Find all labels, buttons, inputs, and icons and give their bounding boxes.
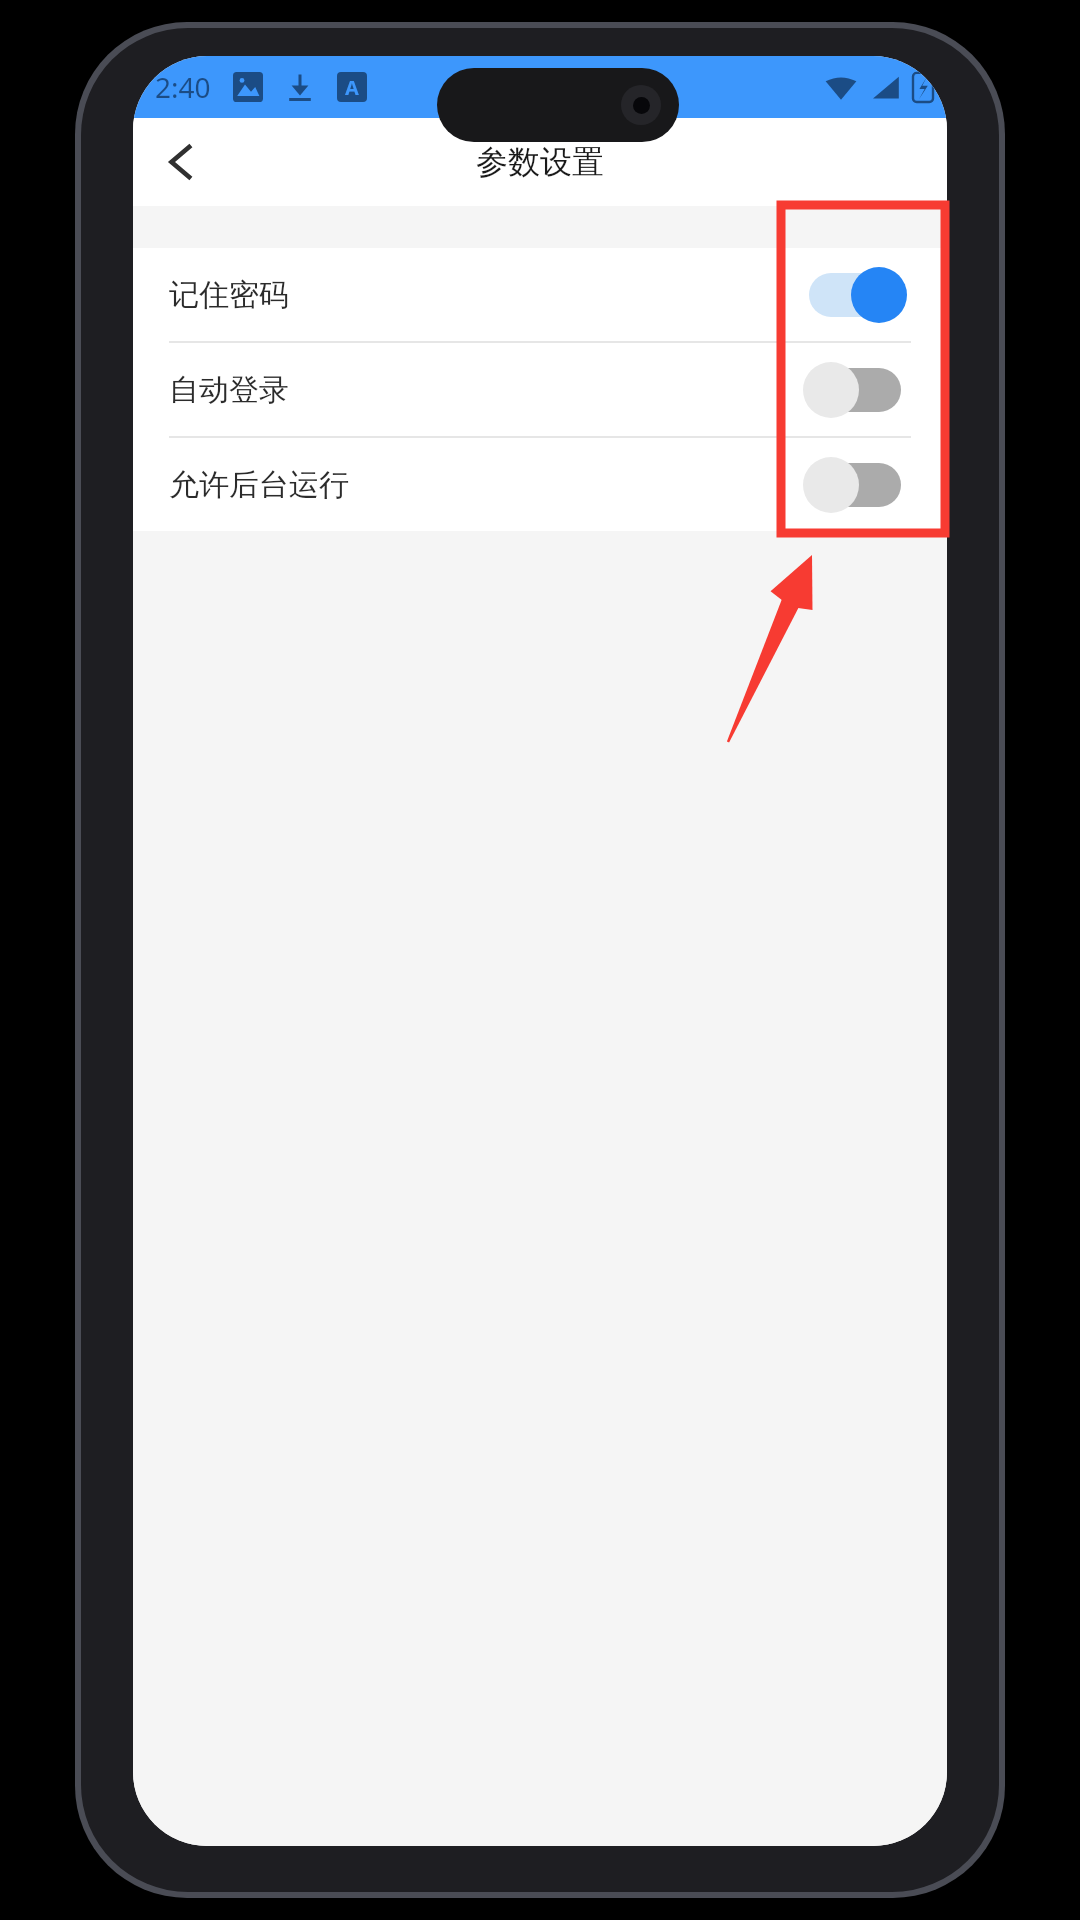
button[interactable]: Off (803, 362, 907, 418)
staticText: 自动登录 (169, 371, 289, 409)
staticText: 记住密码 (169, 276, 289, 314)
button[interactable]: On (803, 267, 907, 323)
button[interactable]: 自动登录 (133, 343, 947, 436)
button[interactable]: Off (803, 457, 907, 513)
button[interactable]: Back (145, 126, 217, 198)
button[interactable]: 记住密码 (133, 248, 947, 341)
staticText: 参数设置 (476, 142, 604, 182)
staticText: 允许后台运行 (169, 466, 349, 504)
button[interactable]: 允许后台运行 (133, 438, 947, 531)
staticText: A (345, 74, 359, 101)
staticText: 2:40 (155, 68, 211, 106)
